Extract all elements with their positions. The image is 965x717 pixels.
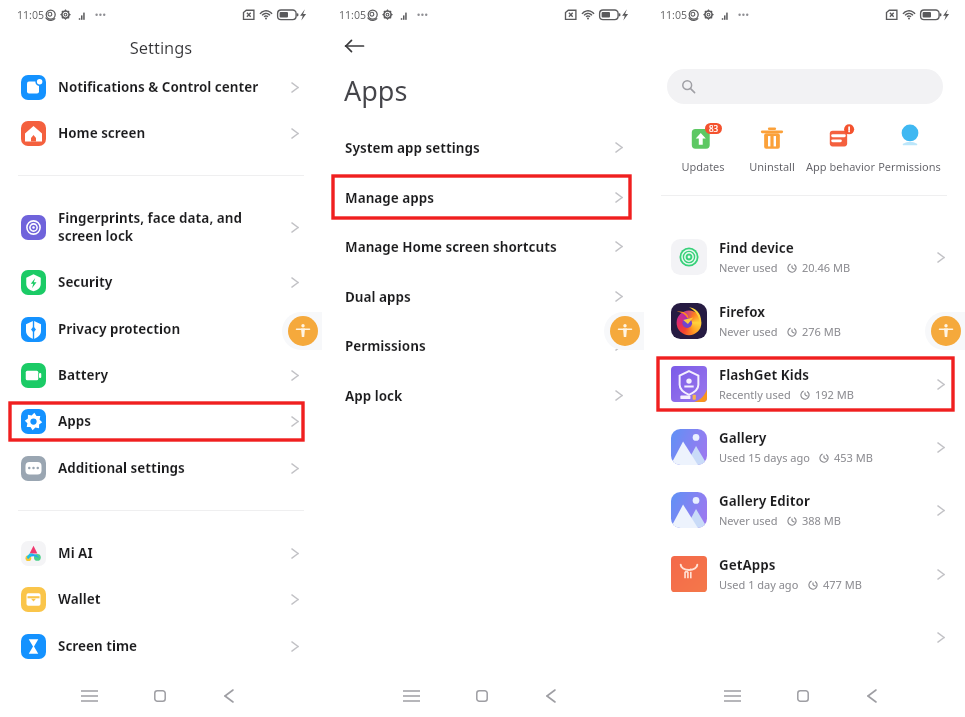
staticText: 276 MB <box>802 324 841 339</box>
button[interactable]: GetApps <box>643 549 965 599</box>
staticText: Permissions <box>878 159 941 174</box>
button[interactable]: Gallery <box>643 422 965 472</box>
button[interactable]: Wallet <box>0 576 322 622</box>
staticText: Mi AI <box>58 544 291 562</box>
staticText: Permissions <box>345 337 615 355</box>
staticText: Find device <box>719 239 794 257</box>
staticText: Used 1 day ago <box>719 577 799 592</box>
button[interactable]: Back <box>211 678 247 714</box>
button[interactable]: Accessibility menu <box>288 316 318 346</box>
button[interactable]: Home <box>785 678 821 714</box>
button[interactable]: Accessibility menu <box>931 316 961 346</box>
staticText: Notifications & Control center <box>58 78 291 96</box>
staticText: Firefox <box>719 303 766 321</box>
button[interactable]: Notifications & Control center <box>0 64 322 110</box>
staticText: Never used <box>719 324 778 339</box>
staticText: App behavior <box>806 159 875 174</box>
staticText: Battery <box>58 366 291 384</box>
staticText: 11:05 <box>17 8 45 22</box>
staticText: Used 15 days ago <box>719 450 810 465</box>
staticText: Manage Home screen shortcuts <box>345 238 615 256</box>
button[interactable]: Accessibility menu <box>610 316 640 346</box>
button[interactable]: Home <box>142 678 178 714</box>
staticText: Gallery <box>719 429 767 447</box>
button[interactable]: Search apps <box>667 69 943 104</box>
button[interactable]: Recents <box>714 678 750 714</box>
staticText: GetApps <box>719 556 776 574</box>
staticText: Screen time <box>58 637 291 655</box>
staticText: Never used <box>719 260 778 275</box>
staticText: Uninstall <box>749 159 795 174</box>
staticText: Home screen <box>58 124 291 142</box>
button[interactable]: Find device <box>643 232 965 282</box>
staticText: 11:05 <box>660 8 688 22</box>
staticText: Privacy protection <box>58 320 291 338</box>
button[interactable]: Screen time <box>0 623 322 669</box>
staticText: 388 MB <box>802 513 841 528</box>
staticText: Manage apps <box>345 189 615 207</box>
staticText: 477 MB <box>823 577 862 592</box>
staticText: 11:05 <box>339 8 367 22</box>
staticText: Wallet <box>58 590 291 608</box>
button[interactable]: Additional settings <box>0 445 322 491</box>
button[interactable]: Back <box>340 32 368 60</box>
staticText: Never used <box>719 513 778 528</box>
button[interactable]: Gallery Editor <box>643 485 965 535</box>
staticText: 83 <box>709 123 719 134</box>
button[interactable]: Home screen <box>0 110 322 156</box>
button[interactable]: Back <box>533 678 569 714</box>
staticText: 192 MB <box>815 387 854 402</box>
staticText: Apps <box>58 412 291 430</box>
staticText: Settings <box>0 36 322 58</box>
staticText: 20.46 MB <box>802 260 851 275</box>
staticText: Recently used <box>719 387 791 402</box>
button[interactable]: App behavior <box>804 124 876 176</box>
button[interactable]: Mi AI <box>0 530 322 576</box>
button[interactable]: Uninstall <box>736 124 808 176</box>
staticText: System app settings <box>345 139 615 157</box>
button[interactable]: Home <box>464 678 500 714</box>
button[interactable]: Dual apps <box>322 272 644 321</box>
staticText: Gallery Editor <box>719 492 810 510</box>
button[interactable]: Battery <box>0 352 322 398</box>
button[interactable]: Security <box>0 259 322 305</box>
button[interactable]: Apps <box>0 398 322 444</box>
button[interactable]: Recents <box>71 678 107 714</box>
button[interactable]: Fingerprints, face data, and screen lock <box>0 204 322 250</box>
staticText: App lock <box>345 387 615 405</box>
staticText: Updates <box>681 159 725 174</box>
button[interactable]: Permissions <box>322 321 644 370</box>
button[interactable]: App lock <box>322 371 644 420</box>
button[interactable]: Firefox <box>643 296 965 346</box>
button[interactable]: FlashGet Kids <box>643 359 965 409</box>
button[interactable]: Back <box>854 678 890 714</box>
staticText: 453 MB <box>834 450 873 465</box>
staticText: Dual apps <box>345 288 615 306</box>
button[interactable]: Manage apps <box>322 173 644 222</box>
staticText: Fingerprints, face data, and screen lock <box>58 209 291 245</box>
button[interactable]: 83 <box>667 124 739 176</box>
staticText: Apps <box>344 72 408 109</box>
button[interactable]: Manage Home screen shortcuts <box>322 222 644 271</box>
button[interactable]: Permissions <box>873 124 945 176</box>
staticText: Security <box>58 273 291 291</box>
staticText: Additional settings <box>58 459 291 477</box>
button[interactable]: Privacy protection <box>0 306 322 352</box>
button[interactable]: Recents <box>393 678 429 714</box>
button[interactable]: System app settings <box>322 123 644 172</box>
staticText: FlashGet Kids <box>719 366 809 384</box>
